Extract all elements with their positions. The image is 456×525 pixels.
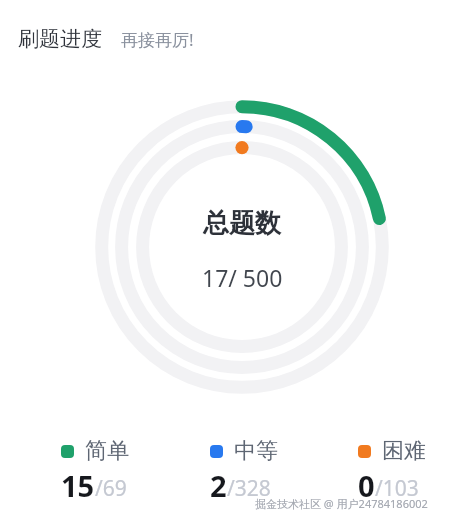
button[interactable]: 刷题进度: [18, 26, 102, 52]
button[interactable]: 中等: [210, 437, 278, 505]
staticText: 掘金技术社区 @ 用户24784186002: [255, 496, 428, 511]
staticText: 困难: [382, 437, 426, 465]
staticText: 总题数: [203, 207, 281, 240]
staticText: 简单: [85, 437, 129, 465]
staticText: 中等: [234, 437, 278, 465]
staticText: 0: [358, 466, 375, 505]
staticText: 2: [210, 466, 227, 505]
staticText: /69: [95, 474, 127, 503]
staticText: 再接再厉!: [121, 28, 194, 51]
staticText: /328: [227, 474, 271, 503]
staticText: /103: [375, 474, 419, 503]
button[interactable]: 简单: [61, 437, 129, 505]
button[interactable]: 困难: [358, 437, 426, 505]
staticText: 17/ 500: [202, 262, 283, 293]
staticText: 15: [61, 466, 95, 505]
